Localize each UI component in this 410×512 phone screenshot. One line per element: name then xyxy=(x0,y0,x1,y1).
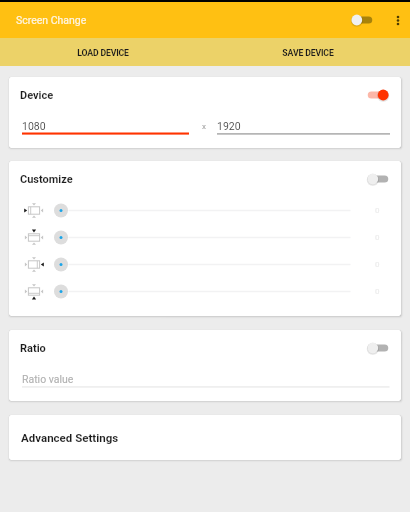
staticText: Advanced Settings xyxy=(21,431,119,444)
staticText: 1080 xyxy=(22,120,46,132)
button[interactable]: Bottom padding xyxy=(9,278,401,305)
staticText: LOAD DEVICE xyxy=(77,48,129,58)
button[interactable]: Top padding xyxy=(9,224,401,251)
button[interactable]: Customize enabled xyxy=(360,166,396,192)
staticText: x xyxy=(202,122,206,131)
button[interactable]: Right padding xyxy=(9,251,401,278)
staticText: SAVE DEVICE xyxy=(282,48,334,58)
staticText: 0 xyxy=(375,233,380,242)
button[interactable]: Enable screen change xyxy=(344,7,380,33)
button[interactable]: Height xyxy=(217,115,390,135)
button[interactable]: Device enabled xyxy=(360,82,396,108)
staticText: 1920 xyxy=(217,120,241,132)
staticText: Screen Change xyxy=(16,14,87,26)
button[interactable]: Advanced Settings xyxy=(9,415,401,460)
staticText: 0 xyxy=(375,260,380,269)
staticText: 0 xyxy=(375,287,380,296)
staticText: 0 xyxy=(375,206,380,215)
button[interactable]: Ratio enabled xyxy=(360,335,396,361)
button[interactable]: Ratio value xyxy=(22,368,389,388)
button[interactable]: Width xyxy=(22,115,189,135)
staticText: Customize xyxy=(20,173,73,186)
button[interactable]: More options xyxy=(386,8,410,32)
button[interactable]: LOAD DEVICE xyxy=(0,38,205,66)
staticText: Ratio value xyxy=(22,373,74,385)
staticText: Ratio xyxy=(20,342,46,355)
staticText: Device xyxy=(20,89,54,102)
button[interactable]: SAVE DEVICE xyxy=(205,38,410,66)
button[interactable]: Left padding xyxy=(9,197,401,224)
